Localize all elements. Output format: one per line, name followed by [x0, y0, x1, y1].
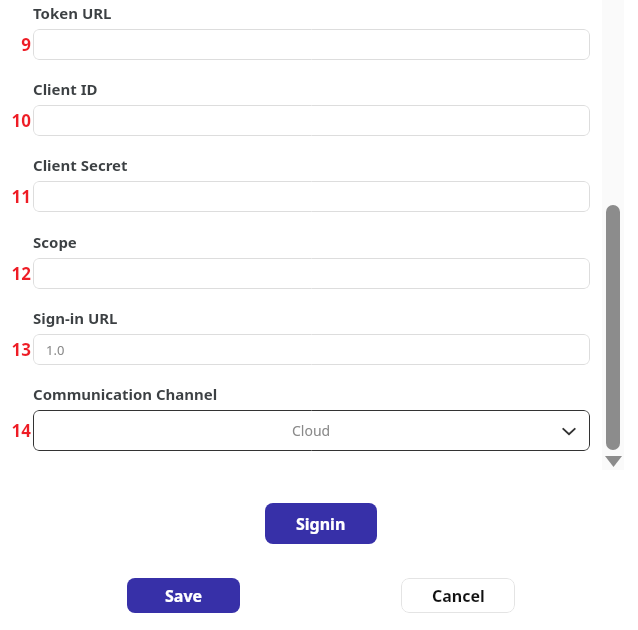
staticText: Communication Channel: [33, 384, 218, 404]
staticText: Cloud: [292, 421, 331, 440]
button[interactable]: 1.0: [33, 334, 590, 365]
staticText: 11: [11, 185, 31, 208]
staticText: 13: [11, 338, 31, 361]
staticText: Client ID: [33, 79, 98, 99]
staticText: 9: [21, 33, 31, 56]
staticText: Cancel: [432, 585, 485, 607]
button[interactable]: Signin: [265, 503, 377, 544]
button[interactable]: [33, 181, 590, 212]
staticText: Token URL: [33, 3, 112, 23]
button[interactable]: Scroll position: [606, 205, 620, 450]
staticText: 10: [11, 109, 31, 132]
staticText: Save: [165, 585, 203, 607]
button[interactable]: [33, 258, 590, 289]
staticText: Scope: [33, 232, 77, 252]
button[interactable]: Cancel: [401, 578, 515, 613]
staticText: Sign-in URL: [33, 308, 118, 328]
staticText: 12: [11, 262, 31, 285]
button[interactable]: [33, 29, 590, 60]
staticText: 1.0: [46, 341, 65, 359]
button[interactable]: Scroll down: [603, 452, 623, 470]
button[interactable]: [33, 105, 590, 136]
staticText: Client Secret: [33, 155, 128, 175]
button[interactable]: Save: [127, 578, 240, 613]
staticText: 14: [11, 419, 31, 442]
staticText: Signin: [296, 513, 346, 535]
button[interactable]: Cloud: [33, 410, 590, 451]
